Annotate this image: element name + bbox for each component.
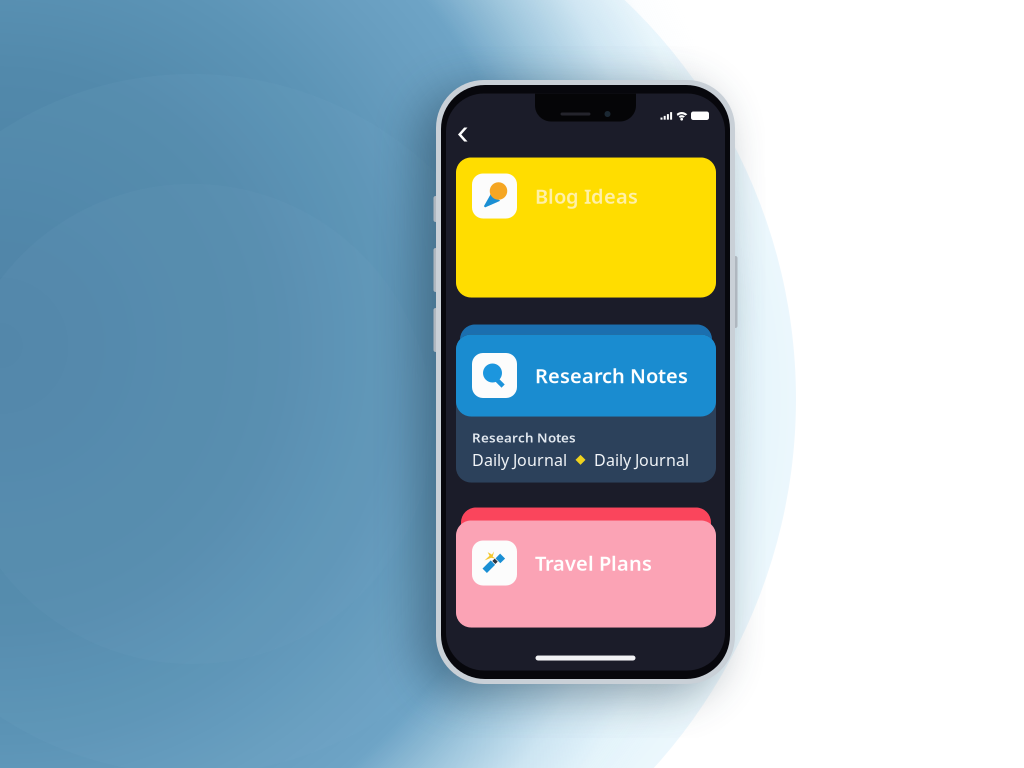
button[interactable]: Research Notes [456, 334, 716, 416]
staticText: Research Notes [535, 362, 688, 389]
staticText: Travel Plans [535, 550, 652, 576]
staticText: Daily Journal [594, 449, 689, 470]
button[interactable]: Blog Ideas [456, 157, 716, 297]
button[interactable]: Travel Plans [456, 520, 716, 627]
staticText: Blog Ideas [535, 183, 638, 209]
staticText: Daily Journal [472, 449, 567, 470]
button[interactable]: Back [449, 124, 476, 144]
staticText: Research Notes [472, 428, 576, 446]
